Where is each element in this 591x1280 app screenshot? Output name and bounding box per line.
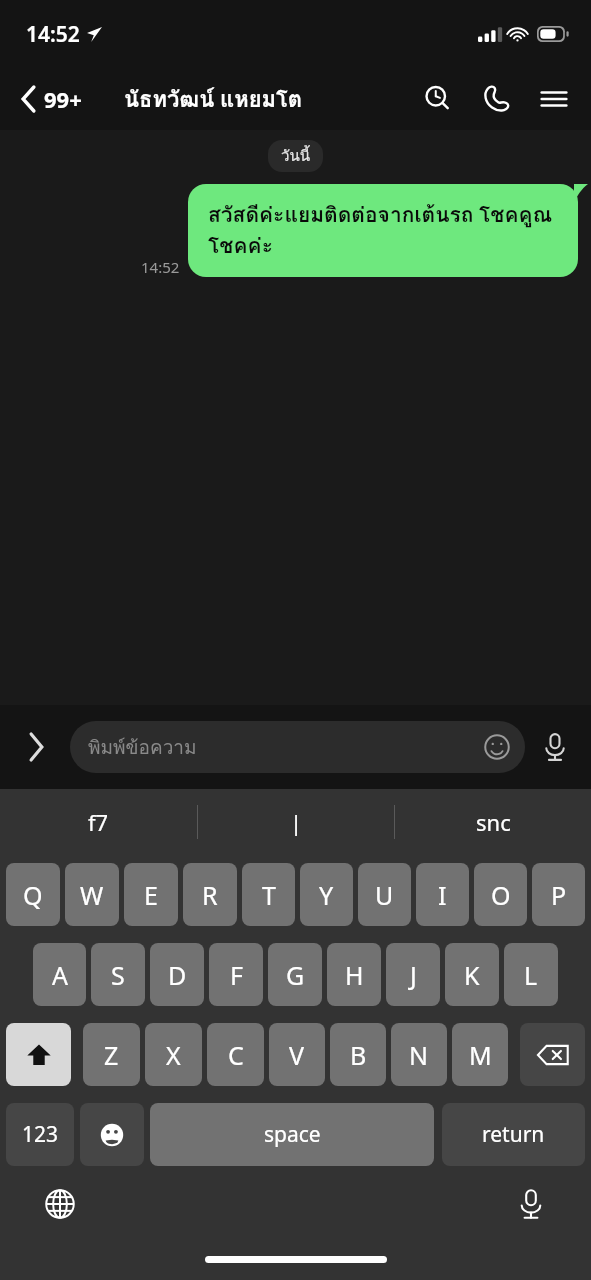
button[interactable]: space	[150, 1103, 434, 1166]
button[interactable]: Call	[473, 76, 519, 122]
button[interactable]: Back, 99 plus unread	[14, 78, 90, 120]
staticText: |	[290, 807, 303, 837]
button[interactable]: Z	[83, 1023, 140, 1086]
button[interactable]: พิมพ์ข้อความ	[70, 721, 525, 773]
staticText: f7	[88, 807, 109, 837]
staticText: สวัสดีค่ะแยมติดต่อจากเต้นรถ โชคคูณ โชคค่…	[208, 198, 553, 263]
staticText: N	[409, 1038, 429, 1072]
button[interactable]: Search chat history	[415, 76, 461, 122]
staticText: S	[111, 958, 125, 992]
button[interactable]: Shift	[6, 1023, 71, 1086]
staticText: L	[524, 958, 538, 992]
staticText: A	[52, 958, 68, 992]
staticText: E	[144, 878, 158, 912]
staticText: snc	[476, 807, 511, 837]
button[interactable]: สวัสดีค่ะแยมติดต่อจากเต้นรถ โชคคูณ โชคค่…	[188, 184, 578, 277]
button[interactable]: M	[452, 1023, 508, 1086]
button[interactable]: Voice message	[533, 725, 577, 769]
button[interactable]: Menu	[531, 76, 577, 122]
staticText: J	[410, 958, 417, 992]
button[interactable]: 123	[6, 1103, 74, 1166]
staticText: X	[166, 1038, 181, 1072]
button[interactable]: K	[445, 943, 499, 1006]
button[interactable]: return	[442, 1103, 585, 1166]
staticText: B	[350, 1038, 367, 1072]
button[interactable]: L	[504, 943, 558, 1006]
button[interactable]: V	[269, 1023, 325, 1086]
staticText: T	[262, 878, 276, 912]
button[interactable]: Emoji	[481, 731, 513, 763]
button[interactable]: U	[358, 863, 411, 926]
button[interactable]: P	[532, 863, 585, 926]
staticText: วันนี้	[281, 144, 310, 168]
staticText: Z	[104, 1038, 119, 1072]
button[interactable]: J	[386, 943, 440, 1006]
staticText: นัธทวัฒน์ แหยมโต	[124, 82, 303, 117]
staticText: 123	[22, 1120, 59, 1149]
button[interactable]: F	[209, 943, 263, 1006]
button[interactable]: G	[268, 943, 322, 1006]
staticText: พิมพ์ข้อความ	[88, 732, 197, 762]
button[interactable]: B	[330, 1023, 386, 1086]
button[interactable]: Change keyboard language	[36, 1180, 84, 1228]
staticText: 99+	[44, 84, 82, 114]
staticText: Q	[23, 878, 43, 912]
staticText: Y	[319, 878, 334, 912]
button[interactable]: Q	[6, 863, 60, 926]
staticText: G	[286, 958, 305, 992]
button[interactable]: Y	[300, 863, 353, 926]
staticText: H	[345, 958, 364, 992]
button[interactable]: D	[150, 943, 204, 1006]
button[interactable]: f7	[0, 789, 197, 855]
staticText: O	[491, 878, 511, 912]
staticText: 14:52	[26, 20, 80, 49]
staticText: R	[202, 878, 218, 912]
staticText: M	[469, 1038, 492, 1072]
button[interactable]: A	[33, 943, 86, 1006]
button[interactable]: |	[198, 789, 394, 855]
button[interactable]: Emoji keyboard	[80, 1103, 144, 1166]
button[interactable]: N	[391, 1023, 447, 1086]
button[interactable]: More options	[14, 725, 58, 769]
staticText: K	[464, 958, 480, 992]
button[interactable]: Backspace	[520, 1023, 585, 1086]
staticText: return	[482, 1120, 545, 1149]
staticText: F	[230, 958, 243, 992]
staticText: D	[168, 958, 187, 992]
staticText: P	[551, 878, 567, 912]
staticText: U	[375, 878, 394, 912]
staticText: space	[264, 1120, 321, 1149]
button[interactable]: C	[207, 1023, 264, 1086]
button[interactable]: S	[91, 943, 145, 1006]
button[interactable]: H	[327, 943, 381, 1006]
staticText: W	[80, 878, 104, 912]
button[interactable]: snc	[395, 789, 591, 855]
staticText: C	[228, 1038, 244, 1072]
staticText: I	[438, 878, 447, 912]
button[interactable]: T	[242, 863, 295, 926]
button[interactable]: E	[124, 863, 178, 926]
staticText: 14:52	[141, 257, 180, 277]
button[interactable]: Dictation	[507, 1180, 555, 1228]
button[interactable]: W	[65, 863, 119, 926]
button[interactable]: R	[183, 863, 237, 926]
button[interactable]: O	[474, 863, 527, 926]
button[interactable]: I	[416, 863, 469, 926]
button[interactable]: X	[145, 1023, 202, 1086]
staticText: V	[289, 1038, 305, 1072]
